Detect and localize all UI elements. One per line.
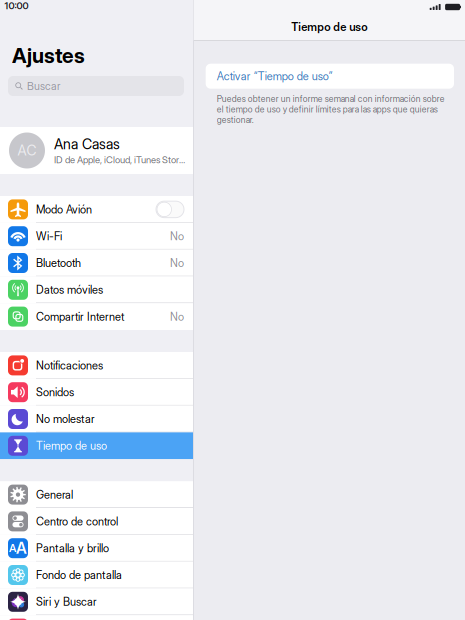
staticText: Tiempo de uso <box>36 439 107 452</box>
staticText: Compartir Internet <box>36 310 124 323</box>
button[interactable]: AC <box>0 127 193 174</box>
staticText: Wi-Fi <box>36 229 62 243</box>
staticText: No <box>170 229 184 243</box>
button[interactable]: Buscar <box>8 76 184 96</box>
staticText: Fondo de pantalla <box>36 568 122 582</box>
staticText: Modo Avión <box>36 203 92 216</box>
button[interactable]: A <box>0 535 193 562</box>
button[interactable]: Activar “Tiempo de uso” <box>206 64 454 89</box>
staticText: General <box>36 488 73 501</box>
staticText: Datos móviles <box>36 283 103 296</box>
staticText: Bluetooth <box>36 256 81 270</box>
staticText: A <box>9 542 16 555</box>
staticText: Sonidos <box>36 385 74 399</box>
staticText: Ana Casas <box>54 135 120 153</box>
staticText: Ajustes <box>12 43 85 68</box>
button[interactable]: General <box>0 481 193 508</box>
staticText: Centro de control <box>36 515 118 528</box>
staticText: AC <box>17 142 36 159</box>
button[interactable]: Bluetooth <box>0 250 193 276</box>
staticText: Tiempo de uso <box>291 20 367 34</box>
staticText: No <box>170 310 184 323</box>
button[interactable]: Datos móviles <box>0 276 193 303</box>
button[interactable]: Notificaciones <box>0 352 193 379</box>
staticText: Pantalla y brillo <box>36 541 109 555</box>
staticText: ID de Apple, iCloud, iTunes Store… <box>54 154 187 166</box>
button[interactable]: Face ID y código <box>0 615 193 620</box>
staticText: No <box>170 256 184 270</box>
button[interactable]: Modo Avión <box>0 196 193 223</box>
button[interactable]: Compartir Internet <box>0 303 193 330</box>
staticText: 10:00 <box>4 0 28 12</box>
button[interactable]: Sonidos <box>0 379 193 406</box>
button[interactable]: No molestar <box>0 406 193 432</box>
staticText: Puedes obtener un informe semanal con in… <box>217 94 445 125</box>
button[interactable]: Siri y Buscar <box>0 588 193 615</box>
staticText: A <box>16 539 27 557</box>
staticText: Activar “Tiempo de uso” <box>217 69 333 83</box>
staticText: No molestar <box>36 412 95 426</box>
button[interactable]: Tiempo de uso <box>0 432 193 459</box>
button[interactable]: Centro de control <box>0 508 193 535</box>
button[interactable]: Fondo de pantalla <box>0 562 193 588</box>
button[interactable]: Wi-Fi <box>0 223 193 250</box>
staticText: Siri y Buscar <box>36 595 97 608</box>
staticText: Buscar <box>27 79 60 92</box>
staticText: Notificaciones <box>36 359 103 372</box>
